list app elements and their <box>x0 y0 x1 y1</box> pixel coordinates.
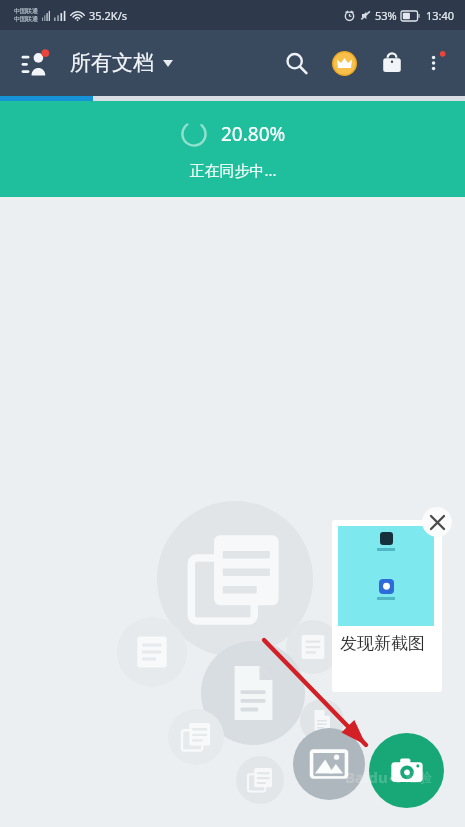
staticText: 中国联通 <box>14 7 38 15</box>
staticText: 13:40 <box>426 8 455 23</box>
button[interactable]: Account <box>14 41 58 85</box>
button[interactable]: 所有文档 <box>70 50 173 76</box>
staticText: 所有文档 <box>70 50 154 76</box>
staticText: 中国联通 <box>14 15 38 23</box>
staticText: 53% <box>375 8 397 23</box>
button[interactable]: Close <box>422 507 452 537</box>
staticText: 正在同步中... <box>189 160 277 180</box>
staticText: 20.80% <box>221 121 286 147</box>
staticText: 经验 <box>406 769 432 785</box>
button[interactable]: Search <box>275 42 317 84</box>
button[interactable]: Store <box>371 42 413 84</box>
button[interactable]: Scan with camera <box>369 733 444 808</box>
button[interactable]: More options <box>415 43 455 83</box>
staticText: 发现新截图 <box>340 633 425 654</box>
button[interactable]: Pick image <box>293 728 365 800</box>
button[interactable]: VIP <box>323 42 365 84</box>
staticText: Baidu <box>345 767 388 787</box>
staticText: 35.2K/s <box>89 8 127 23</box>
button[interactable]: 发现新截图 <box>332 520 442 692</box>
